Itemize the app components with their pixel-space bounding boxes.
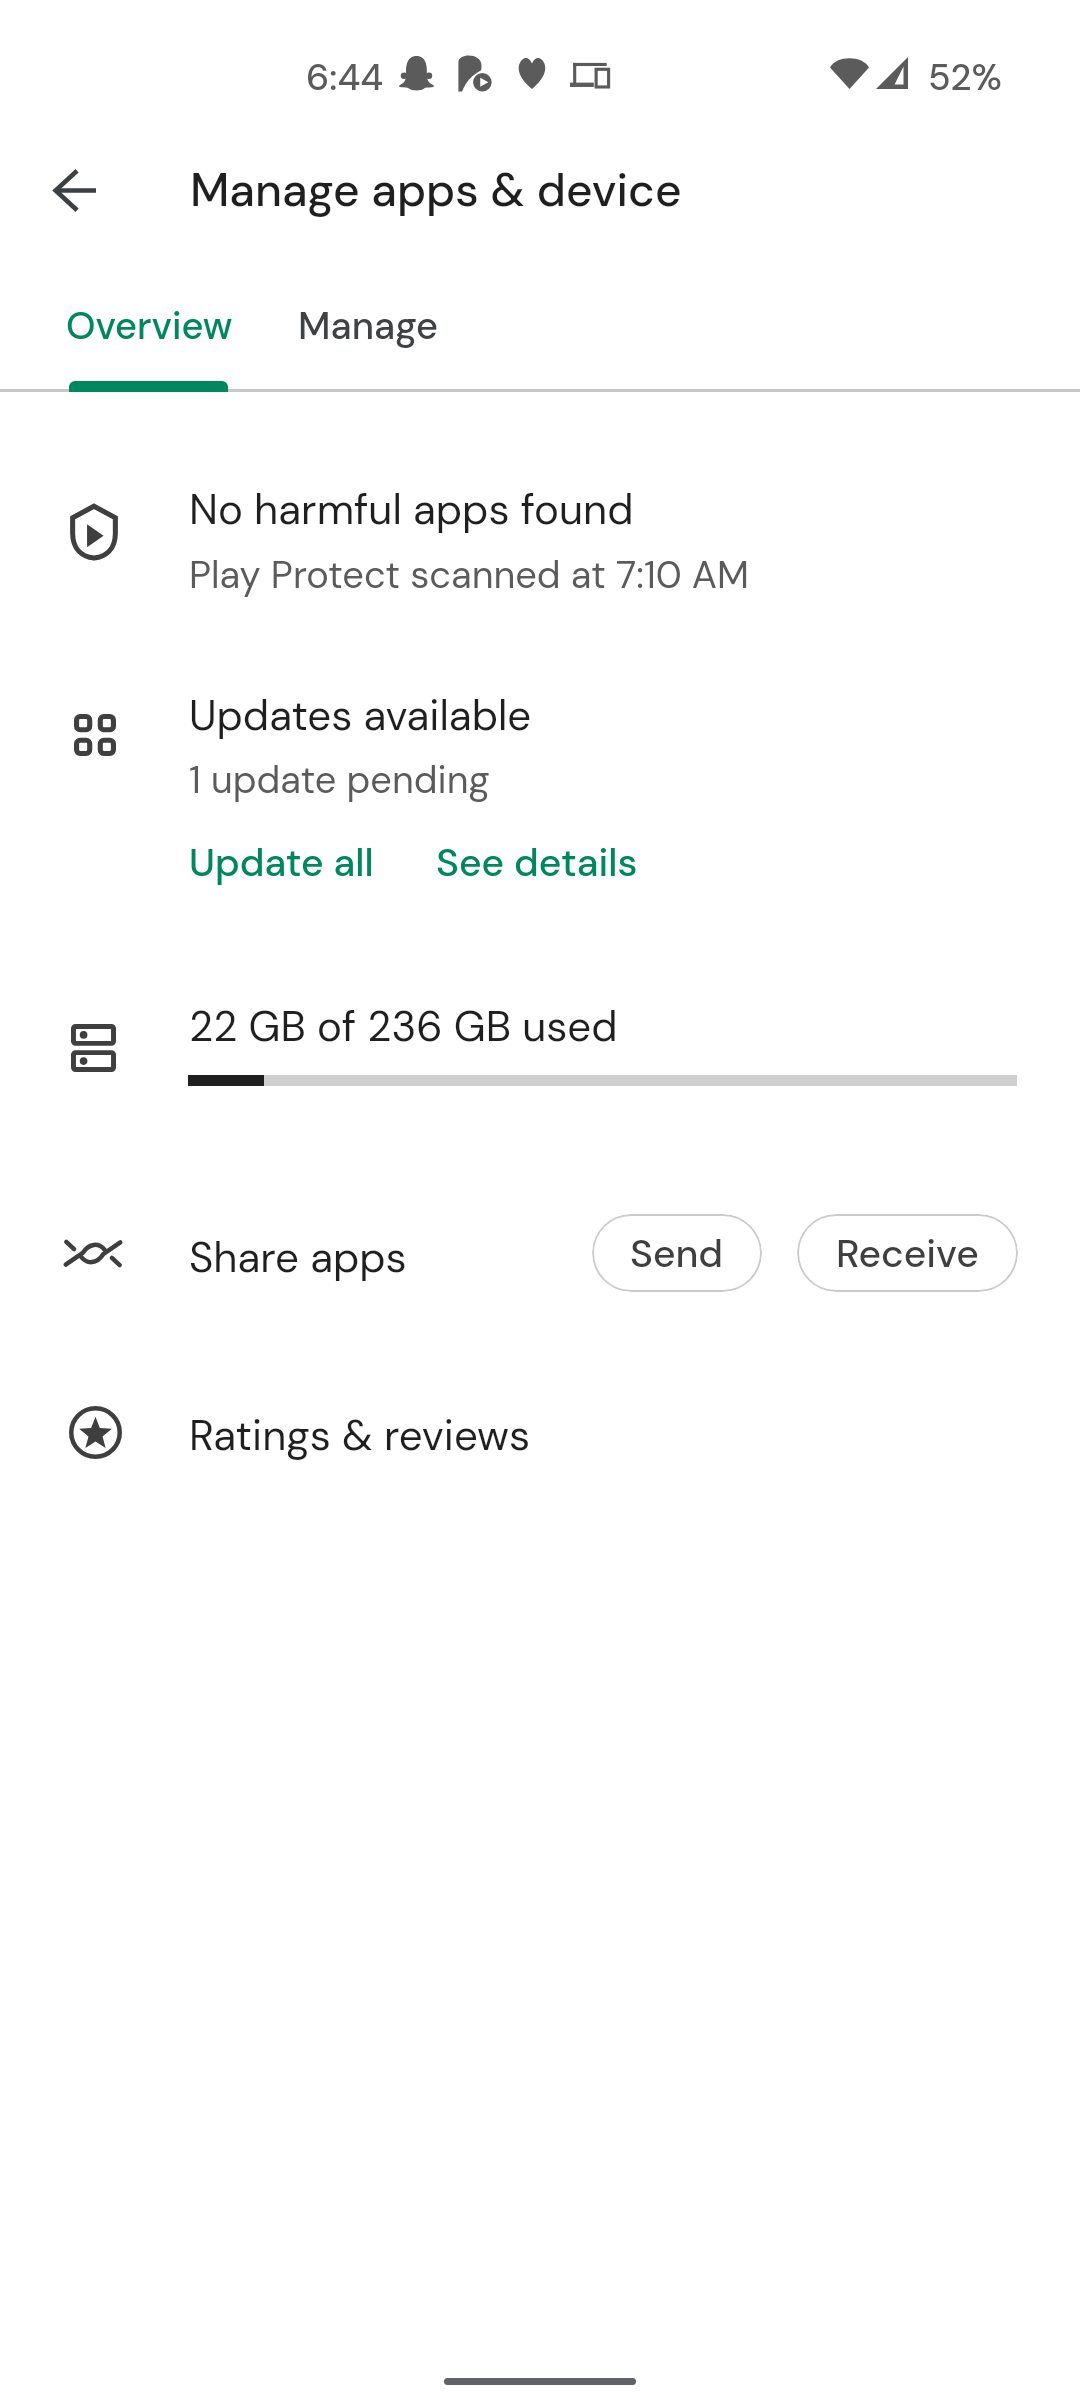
button[interactable] <box>0 676 1080 816</box>
staticText: No harmful apps found <box>189 482 634 537</box>
button[interactable] <box>0 1200 560 1310</box>
staticText: 6:44 <box>306 53 384 101</box>
staticText: Receive <box>836 1228 979 1279</box>
button[interactable]: See details <box>420 826 654 898</box>
staticText: Overview <box>66 301 233 350</box>
staticText: 52% <box>928 53 1002 101</box>
staticText: Manage apps & device <box>190 160 682 220</box>
button[interactable] <box>0 470 1080 610</box>
button[interactable]: Update all <box>173 826 390 898</box>
staticText: Play Protect scanned at 7:10 AM <box>189 550 750 599</box>
staticText: Manage <box>298 301 439 350</box>
button[interactable]: Send <box>592 1214 762 1292</box>
button[interactable]: Manage <box>284 274 524 392</box>
button[interactable] <box>0 980 1080 1110</box>
staticText: See details <box>436 837 638 888</box>
staticText: 22 GB of 236 GB used <box>189 999 618 1054</box>
staticText: Updates available <box>189 688 532 743</box>
button[interactable] <box>0 1380 1080 1490</box>
staticText: 1 update pending <box>189 755 490 804</box>
button[interactable]: Overview <box>8 274 288 392</box>
staticText: Ratings & reviews <box>189 1408 531 1463</box>
staticText: Send <box>630 1228 724 1279</box>
staticText: Update all <box>189 837 374 888</box>
button[interactable]: Receive <box>797 1214 1018 1292</box>
staticText: Share apps <box>189 1230 407 1285</box>
button[interactable]: Back <box>30 146 118 234</box>
